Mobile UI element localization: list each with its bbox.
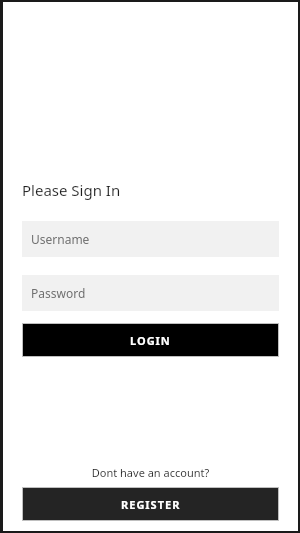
button[interactable]: Username	[22, 221, 279, 257]
button[interactable]: REGISTER	[22, 487, 279, 521]
staticText: LOGIN	[130, 333, 171, 348]
button[interactable]: Password	[22, 275, 279, 311]
staticText: Please Sign In	[22, 180, 121, 200]
staticText: Dont have an account?	[22, 465, 279, 480]
staticText: Password	[31, 285, 86, 301]
staticText: REGISTER	[121, 497, 181, 512]
button[interactable]: LOGIN	[22, 323, 279, 357]
staticText: Username	[31, 231, 90, 247]
